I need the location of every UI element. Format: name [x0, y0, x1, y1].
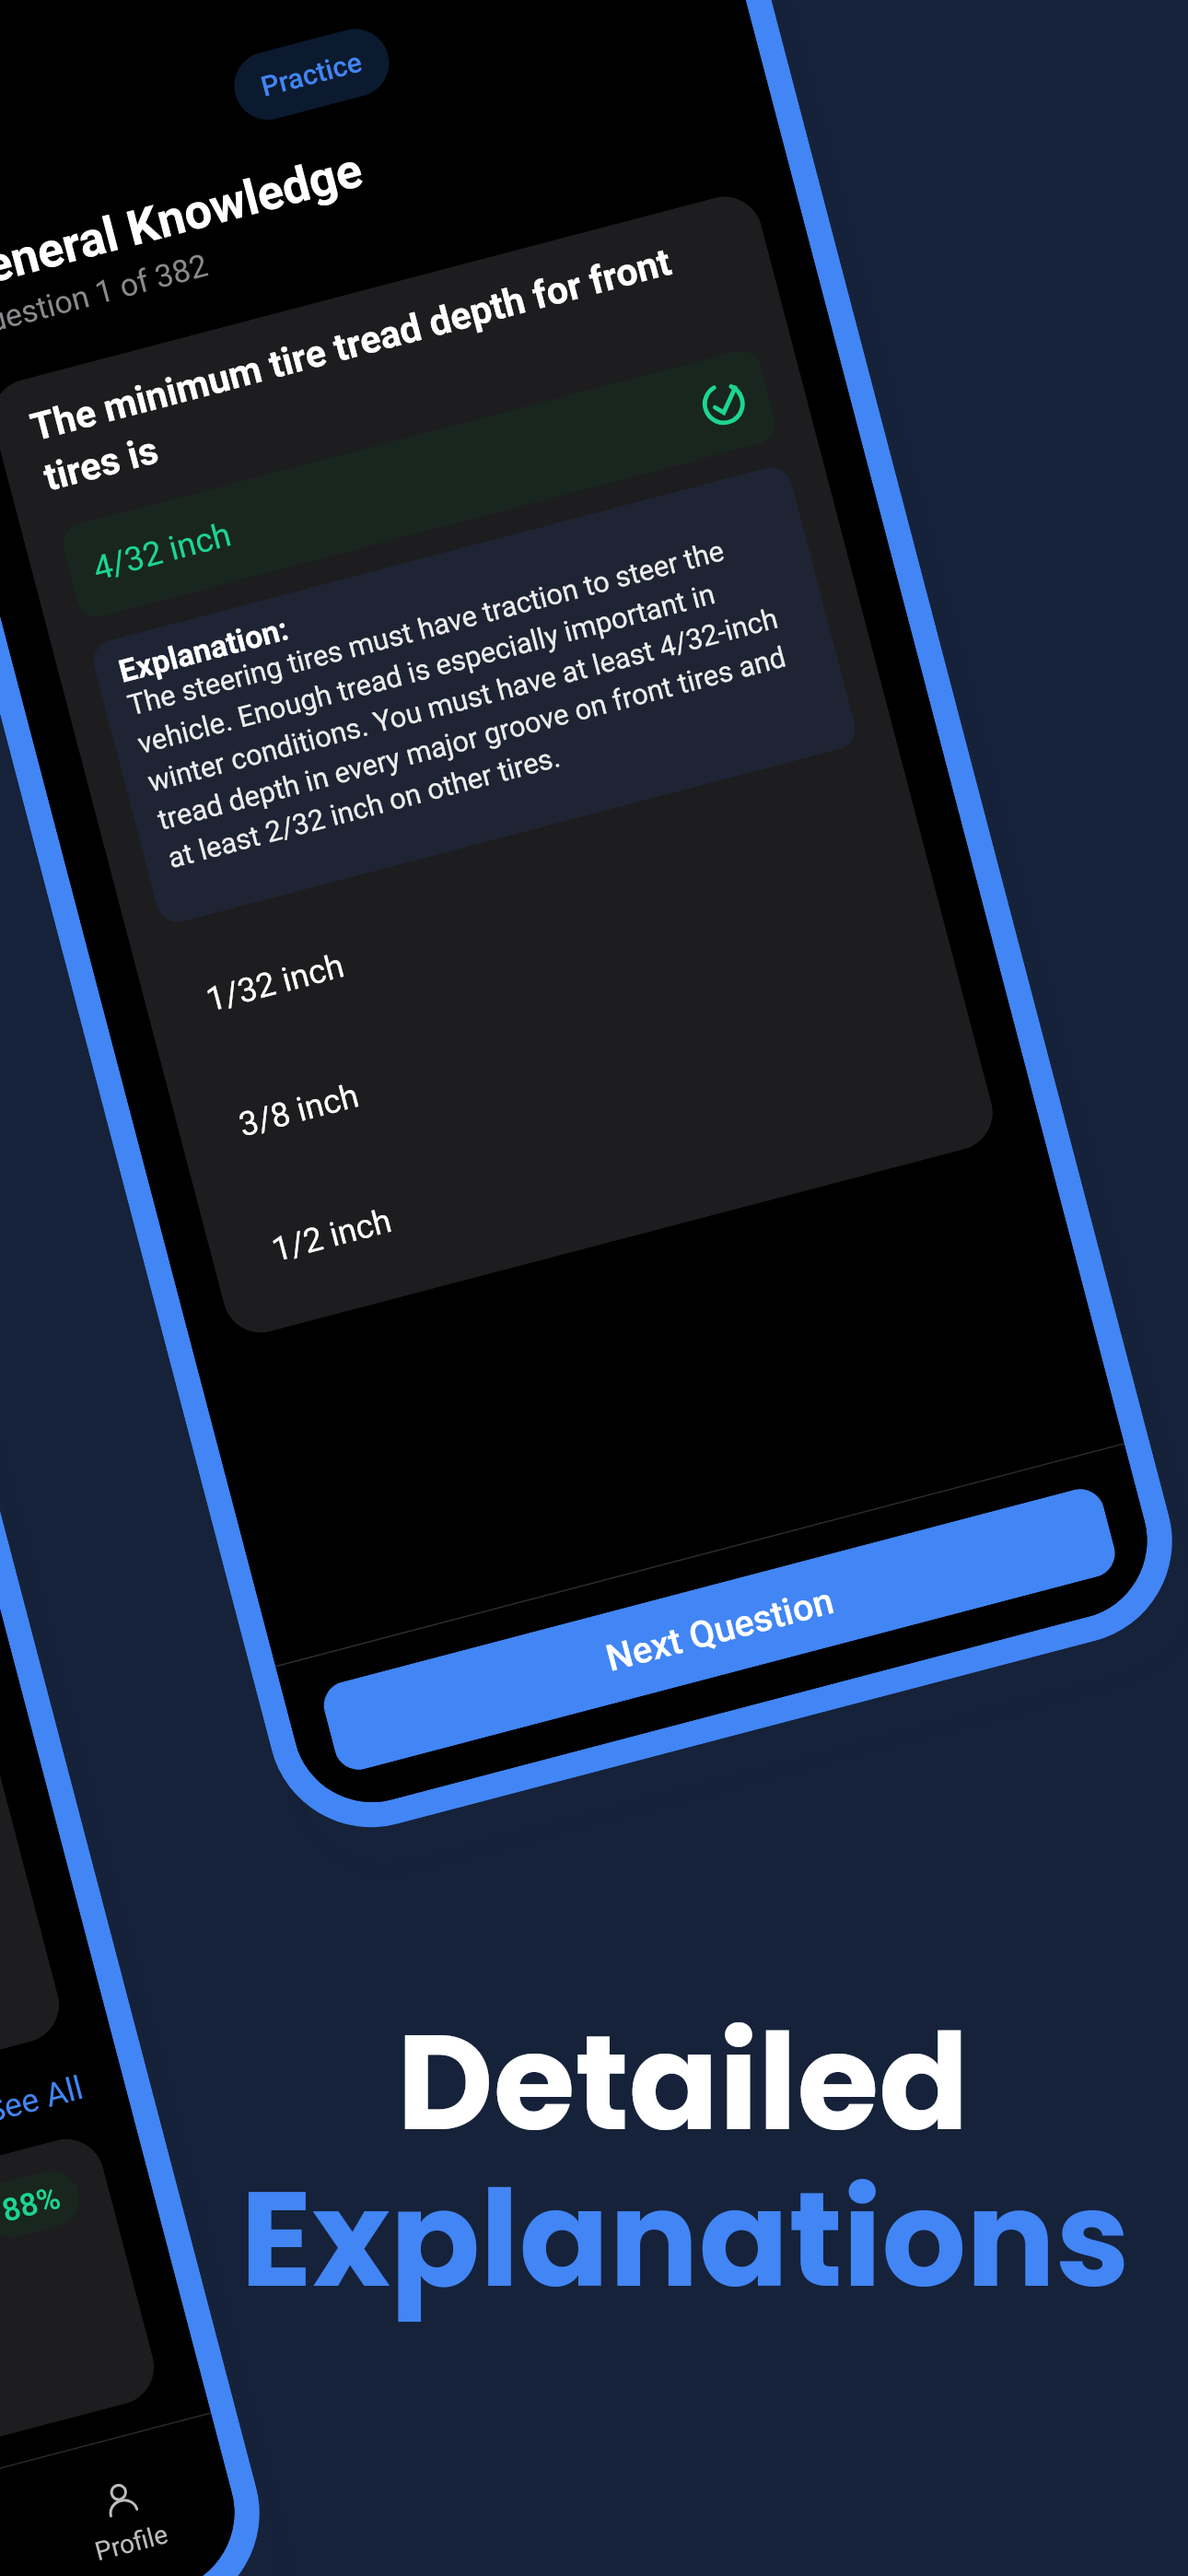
staticText: The steering tires must have traction to… — [124, 519, 825, 875]
staticText: 4/32 inch — [89, 515, 235, 588]
button[interactable]: 4/32 inch — [58, 346, 780, 622]
staticText: The minimum tire tread depth for front t… — [26, 224, 748, 500]
staticText: General Knowledge — [0, 141, 368, 303]
button[interactable]: Practice — [227, 21, 397, 127]
button[interactable]: 1/32 inch — [167, 761, 897, 1069]
staticText: Profile — [92, 2519, 171, 2567]
staticText: See All — [0, 2068, 87, 2130]
staticText: Practice — [257, 45, 366, 103]
button[interactable]: See All — [0, 2068, 87, 2130]
staticText: Question 1 of 382 — [0, 247, 211, 345]
button[interactable]: 3/8 inch — [200, 886, 930, 1194]
staticText: 1/2 inch — [268, 1201, 396, 1270]
other: Correct answer — [698, 378, 749, 430]
staticText: 88% — [0, 2179, 65, 2229]
button[interactable]: General Knowledge — [0, 2131, 162, 2576]
button[interactable]: 1/2 inch — [233, 1011, 963, 1319]
staticText: 3/8 inch — [235, 1076, 363, 1145]
other: Profile — [97, 2476, 145, 2524]
button[interactable] — [0, 1058, 67, 2233]
staticText: Explanations — [240, 2147, 1130, 2333]
button[interactable]: Next Question — [318, 1484, 1120, 1775]
staticText: Explanation: — [115, 610, 292, 690]
staticText: 1/32 inch — [202, 946, 348, 1019]
staticText: Next Question — [602, 1579, 838, 1680]
button[interactable]: Profile — [0, 2414, 252, 2576]
staticText: Detailed — [397, 1990, 970, 2176]
